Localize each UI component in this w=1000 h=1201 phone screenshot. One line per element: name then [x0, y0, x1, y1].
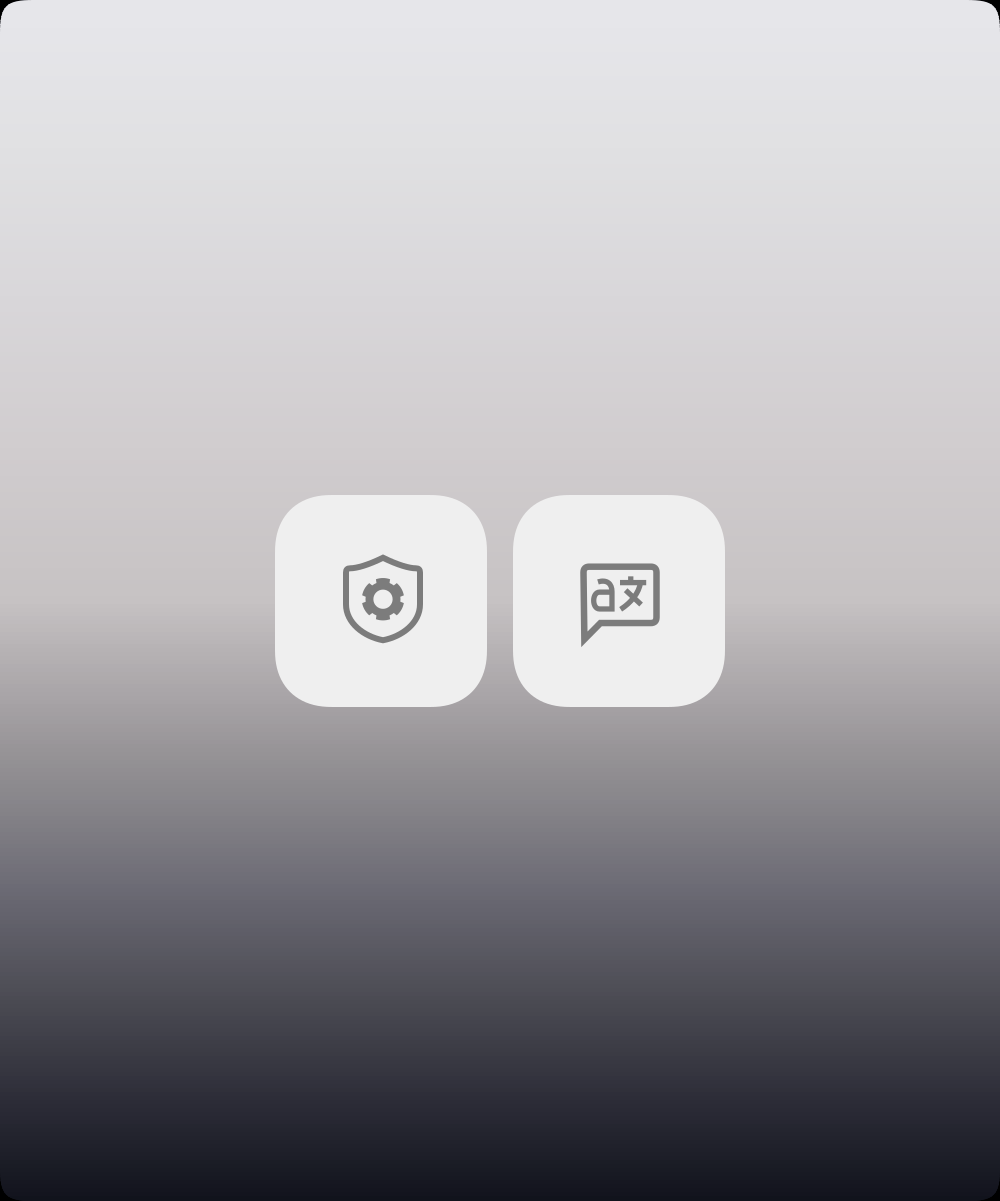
button[interactable]: Privacy and security	[275, 495, 487, 707]
button[interactable]: Translate	[513, 495, 725, 707]
